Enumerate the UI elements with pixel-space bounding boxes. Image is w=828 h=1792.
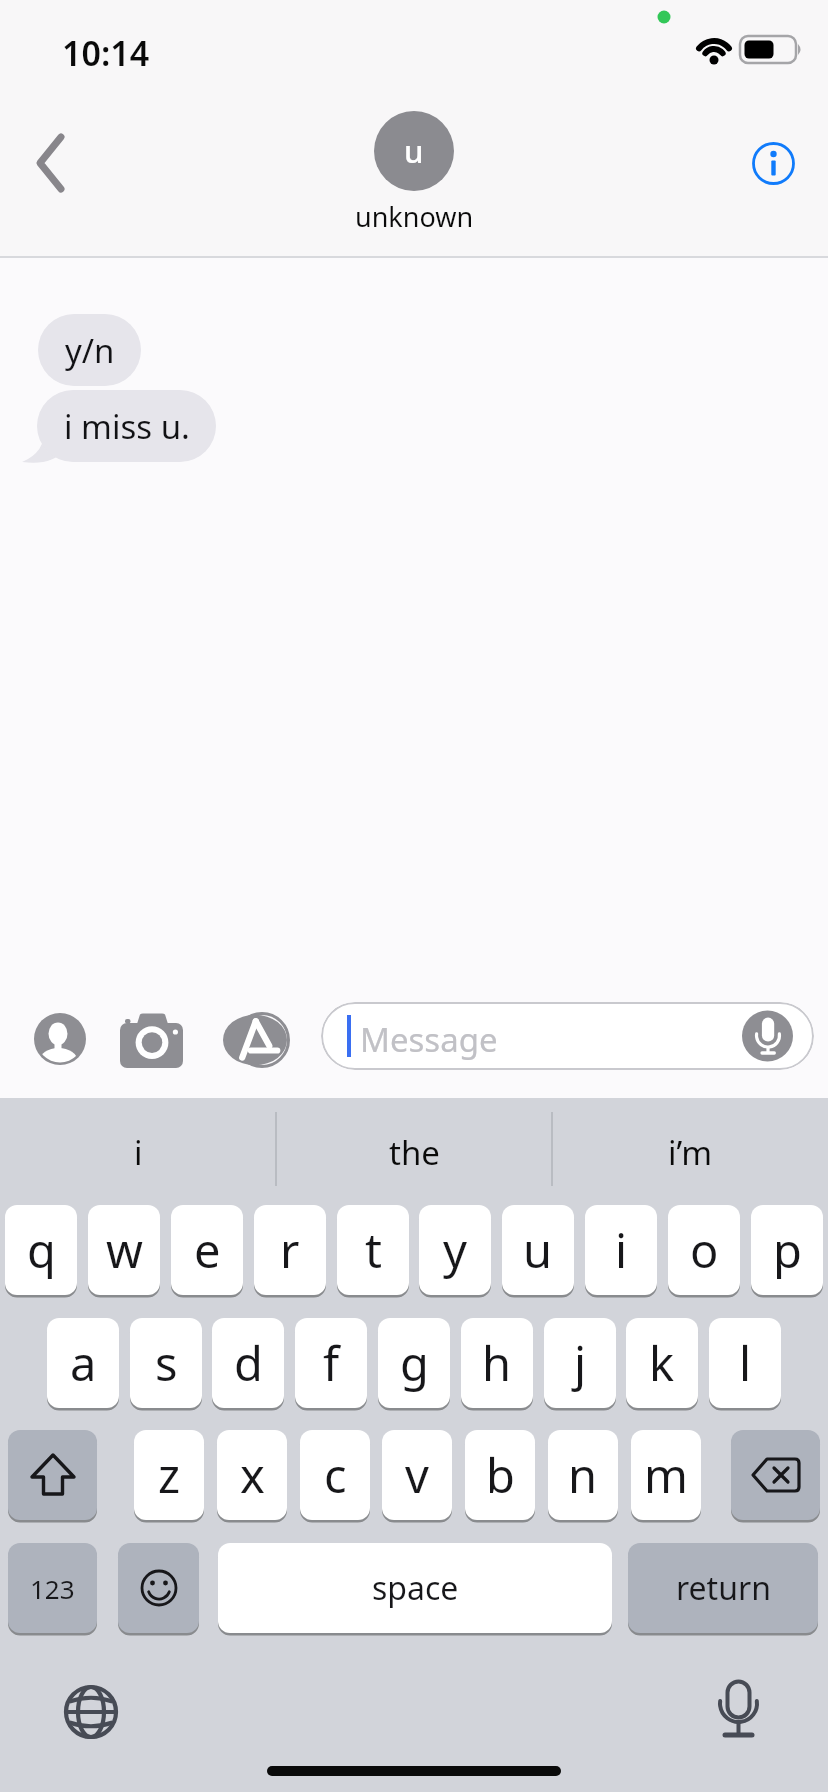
staticText: m bbox=[644, 1443, 688, 1507]
button[interactable]: 123 bbox=[8, 1543, 97, 1633]
button[interactable] bbox=[34, 1013, 86, 1065]
button[interactable]: l bbox=[709, 1318, 781, 1408]
staticText: v bbox=[405, 1443, 429, 1507]
button[interactable] bbox=[30, 125, 80, 200]
button[interactable] bbox=[222, 1010, 294, 1070]
staticText: i bbox=[134, 1130, 143, 1175]
staticText: x bbox=[240, 1443, 265, 1507]
staticText: b bbox=[486, 1443, 515, 1507]
button[interactable] bbox=[742, 1010, 794, 1062]
staticText: g bbox=[400, 1331, 429, 1395]
button[interactable]: a bbox=[47, 1318, 119, 1408]
staticText: d bbox=[234, 1331, 263, 1395]
staticText: y/n bbox=[65, 328, 115, 373]
staticText: p bbox=[773, 1218, 802, 1282]
staticText: y bbox=[443, 1218, 467, 1282]
staticText: o bbox=[690, 1218, 719, 1282]
staticText: a bbox=[70, 1331, 97, 1395]
button[interactable]: s bbox=[130, 1318, 202, 1408]
button[interactable] bbox=[8, 1430, 97, 1520]
button[interactable]: m bbox=[631, 1430, 701, 1520]
button[interactable]: return bbox=[628, 1543, 818, 1633]
button[interactable]: z bbox=[134, 1430, 204, 1520]
button[interactable] bbox=[118, 1008, 188, 1070]
button[interactable]: p bbox=[751, 1205, 823, 1295]
button[interactable] bbox=[750, 140, 797, 187]
button[interactable]: i’m bbox=[552, 1130, 828, 1175]
button[interactable] bbox=[64, 1685, 118, 1739]
staticText: u bbox=[523, 1218, 553, 1282]
button[interactable]: g bbox=[378, 1318, 450, 1408]
button[interactable]: q bbox=[5, 1205, 77, 1295]
staticText: z bbox=[158, 1443, 181, 1507]
button[interactable]: v bbox=[382, 1430, 452, 1520]
staticText: n bbox=[568, 1443, 598, 1507]
button[interactable]: f bbox=[295, 1318, 367, 1408]
staticText: h bbox=[482, 1331, 512, 1395]
staticText: i’m bbox=[668, 1130, 713, 1175]
button[interactable] bbox=[321, 1002, 814, 1070]
staticText: e bbox=[194, 1218, 221, 1282]
button[interactable]: x bbox=[217, 1430, 287, 1520]
staticText: i bbox=[615, 1218, 628, 1282]
staticText: w bbox=[106, 1218, 143, 1282]
button[interactable] bbox=[731, 1430, 820, 1520]
button[interactable]: the bbox=[276, 1130, 552, 1175]
button[interactable]: t bbox=[337, 1205, 409, 1295]
button[interactable] bbox=[118, 1543, 199, 1633]
button[interactable]: e bbox=[171, 1205, 243, 1295]
button[interactable]: o bbox=[668, 1205, 740, 1295]
staticText: 123 bbox=[30, 1571, 75, 1606]
staticText: unknown bbox=[355, 198, 474, 235]
button[interactable] bbox=[716, 1678, 762, 1740]
staticText: u bbox=[404, 130, 424, 172]
staticText: i miss u. bbox=[64, 404, 190, 449]
staticText: c bbox=[324, 1443, 347, 1507]
button[interactable]: h bbox=[461, 1318, 533, 1408]
staticText: r bbox=[280, 1218, 300, 1282]
button[interactable]: u bbox=[502, 1205, 574, 1295]
button[interactable]: d bbox=[212, 1318, 284, 1408]
button[interactable]: y bbox=[419, 1205, 491, 1295]
button[interactable]: j bbox=[544, 1318, 616, 1408]
staticText: 10:14 bbox=[62, 30, 150, 76]
staticText: space bbox=[372, 1566, 459, 1610]
staticText: Message bbox=[360, 1017, 498, 1062]
button[interactable]: k bbox=[626, 1318, 698, 1408]
staticText: k bbox=[649, 1331, 675, 1395]
button[interactable]: w bbox=[88, 1205, 160, 1295]
staticText: t bbox=[365, 1218, 382, 1282]
staticText: the bbox=[389, 1130, 440, 1175]
button[interactable]: c bbox=[300, 1430, 370, 1520]
button[interactable]: i bbox=[585, 1205, 657, 1295]
button[interactable]: n bbox=[548, 1430, 618, 1520]
staticText: l bbox=[739, 1331, 752, 1395]
button[interactable]: space bbox=[218, 1543, 612, 1633]
staticText: return bbox=[676, 1566, 771, 1610]
button[interactable]: r bbox=[254, 1205, 326, 1295]
staticText: f bbox=[323, 1331, 340, 1395]
staticText: j bbox=[574, 1331, 587, 1395]
staticText: s bbox=[155, 1331, 178, 1395]
staticText: q bbox=[27, 1218, 56, 1282]
button[interactable]: i bbox=[0, 1130, 276, 1175]
button[interactable]: b bbox=[465, 1430, 535, 1520]
